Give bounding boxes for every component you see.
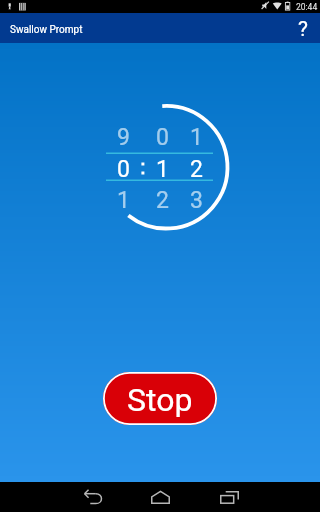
button[interactable]: Home	[145, 482, 175, 512]
staticText: 2	[156, 187, 169, 214]
button[interactable]: Stop	[103, 372, 217, 425]
staticText: 1	[156, 156, 169, 183]
button[interactable]: Recent apps	[214, 482, 244, 512]
staticText: 0	[156, 124, 169, 151]
staticText: 1	[190, 124, 203, 151]
staticText: 2	[190, 156, 203, 183]
staticText: Swallow Prompt	[10, 24, 83, 36]
button[interactable]: Help	[290, 13, 318, 43]
staticText: ?	[298, 17, 308, 42]
button[interactable]: Back	[78, 482, 108, 512]
staticText: 3	[190, 187, 203, 214]
staticText: 9	[117, 124, 130, 151]
staticText: Stop	[127, 381, 193, 419]
staticText: 0	[117, 156, 130, 183]
staticText: 1	[117, 187, 130, 214]
staticText: 20:44	[296, 2, 318, 12]
